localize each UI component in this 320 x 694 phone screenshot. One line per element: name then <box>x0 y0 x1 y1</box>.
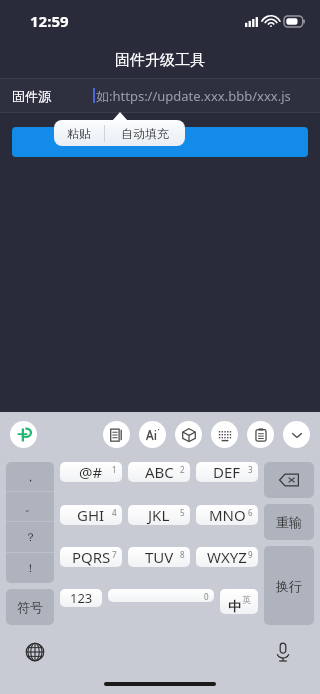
button[interactable]: Clipboard <box>247 421 274 448</box>
button[interactable]: Space <box>108 589 214 602</box>
staticText: ？ <box>25 530 36 544</box>
staticText: 5 <box>180 507 185 518</box>
staticText: JKL <box>148 505 170 525</box>
button[interactable]: 3D emoji <box>175 421 202 448</box>
button[interactable]: ABC <box>128 462 190 482</box>
staticText: ， <box>25 470 36 484</box>
staticText: PQRS <box>72 547 111 567</box>
button[interactable]: 123 <box>60 589 102 607</box>
button[interactable] <box>12 127 308 157</box>
staticText: @# <box>79 462 103 482</box>
staticText: 重输 <box>276 514 302 530</box>
staticText: 7 <box>112 549 117 560</box>
staticText: 9 <box>248 549 253 560</box>
staticText: 固件源 <box>12 88 51 104</box>
button[interactable]: Copy <box>103 421 130 448</box>
staticText: 0 <box>204 591 209 602</box>
button[interactable]: PQRS <box>60 547 122 567</box>
staticText: 6 <box>248 507 253 518</box>
staticText: 英 <box>242 594 251 605</box>
staticText: ！ <box>25 561 36 575</box>
staticText: 符号 <box>17 599 43 615</box>
staticText: 固件升级工具 <box>115 51 205 70</box>
button[interactable]: ， <box>6 462 54 583</box>
button[interactable]: Input method logo <box>10 421 37 448</box>
staticText: 4 <box>112 507 117 518</box>
staticText: 中 <box>228 598 241 614</box>
button[interactable]: 重输 <box>264 504 314 540</box>
staticText: 3 <box>248 464 253 475</box>
staticText: ABC <box>145 462 174 482</box>
button[interactable]: 符号 <box>6 589 54 625</box>
button[interactable]: MNO <box>196 505 258 525</box>
staticText: 粘贴 <box>67 126 91 141</box>
button[interactable]: Backspace <box>264 462 314 498</box>
staticText: 换行 <box>276 578 302 594</box>
staticText: 123 <box>70 589 93 607</box>
staticText: DEF <box>213 462 241 482</box>
button[interactable]: 粘贴 <box>54 120 104 146</box>
staticText: GHI <box>77 505 105 525</box>
staticText: 8 <box>180 549 185 560</box>
button[interactable]: GHI <box>60 505 122 525</box>
staticText: WXYZ <box>207 547 247 567</box>
button[interactable]: AI assistant <box>139 421 166 448</box>
button[interactable]: Voice input <box>270 639 296 665</box>
staticText: 自动填充 <box>121 126 169 141</box>
button[interactable]: Chinese English toggle <box>220 589 258 614</box>
button[interactable]: DEF <box>196 462 258 482</box>
button[interactable]: 自动填充 <box>105 120 185 146</box>
button[interactable]: WXYZ <box>196 547 258 567</box>
staticText: 。 <box>25 500 36 514</box>
button[interactable]: Collapse keyboard <box>283 421 310 448</box>
staticText: 12:59 <box>30 11 69 31</box>
staticText: 2 <box>180 464 185 475</box>
staticText: 如:https://update.xxx.bbb/xxx.js <box>96 87 291 105</box>
button[interactable]: Keyboard layout <box>211 421 238 448</box>
staticText: TUV <box>145 547 174 567</box>
staticText: MNO <box>209 505 246 525</box>
button[interactable]: 换行 <box>264 546 314 625</box>
button[interactable]: Switch language <box>22 639 48 665</box>
button[interactable]: @# <box>60 462 122 482</box>
button[interactable]: JKL <box>128 505 190 525</box>
button[interactable]: TUV <box>128 547 190 567</box>
staticText: 1 <box>112 464 117 475</box>
